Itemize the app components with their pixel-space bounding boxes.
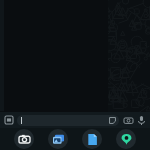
button[interactable]: Stickers: [17, 115, 119, 126]
button[interactable]: Camera: [14, 129, 34, 149]
button[interactable]: Gallery: [48, 129, 68, 149]
button[interactable]: Stickers: [108, 116, 117, 125]
button[interactable]: Voice message: [135, 114, 147, 126]
button[interactable]: Document: [82, 129, 102, 149]
button[interactable]: Location: [116, 129, 136, 149]
button[interactable]: Camera: [122, 114, 134, 126]
button[interactable]: Keyboard: [3, 114, 15, 126]
